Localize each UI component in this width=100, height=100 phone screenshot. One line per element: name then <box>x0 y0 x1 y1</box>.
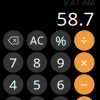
button[interactable]: ÷ <box>74 30 95 51</box>
button[interactable]: + <box>74 96 95 100</box>
staticText: 4 <box>9 76 17 93</box>
button[interactable]: 1 <box>3 96 23 100</box>
staticText: 7 <box>9 54 17 71</box>
staticText: ÷ <box>80 32 88 49</box>
staticText: 8 <box>33 54 41 71</box>
staticText: − <box>80 76 88 93</box>
staticText: 9 <box>57 54 65 71</box>
button[interactable]: 4 <box>3 74 23 95</box>
staticText: 6 <box>57 76 65 93</box>
button[interactable]: − <box>74 74 95 95</box>
staticText: 5 <box>33 76 41 93</box>
button[interactable] <box>3 30 23 51</box>
staticText: 9:41 AM <box>64 0 95 8</box>
button[interactable]: 7 <box>3 52 23 73</box>
button[interactable]: 6 <box>50 74 71 95</box>
staticText: AC <box>30 33 44 48</box>
staticText: % <box>55 32 66 49</box>
button[interactable]: 9 <box>50 52 71 73</box>
button[interactable]: AC <box>27 30 47 51</box>
button[interactable]: 8 <box>27 52 47 73</box>
button[interactable]: 2 <box>27 96 47 100</box>
button[interactable]: × <box>74 52 95 73</box>
button[interactable]: 5 <box>27 74 47 95</box>
staticText: 58.7 <box>57 6 95 31</box>
button[interactable]: 3 <box>50 96 71 100</box>
button[interactable]: % <box>50 30 71 51</box>
staticText: × <box>80 54 88 71</box>
